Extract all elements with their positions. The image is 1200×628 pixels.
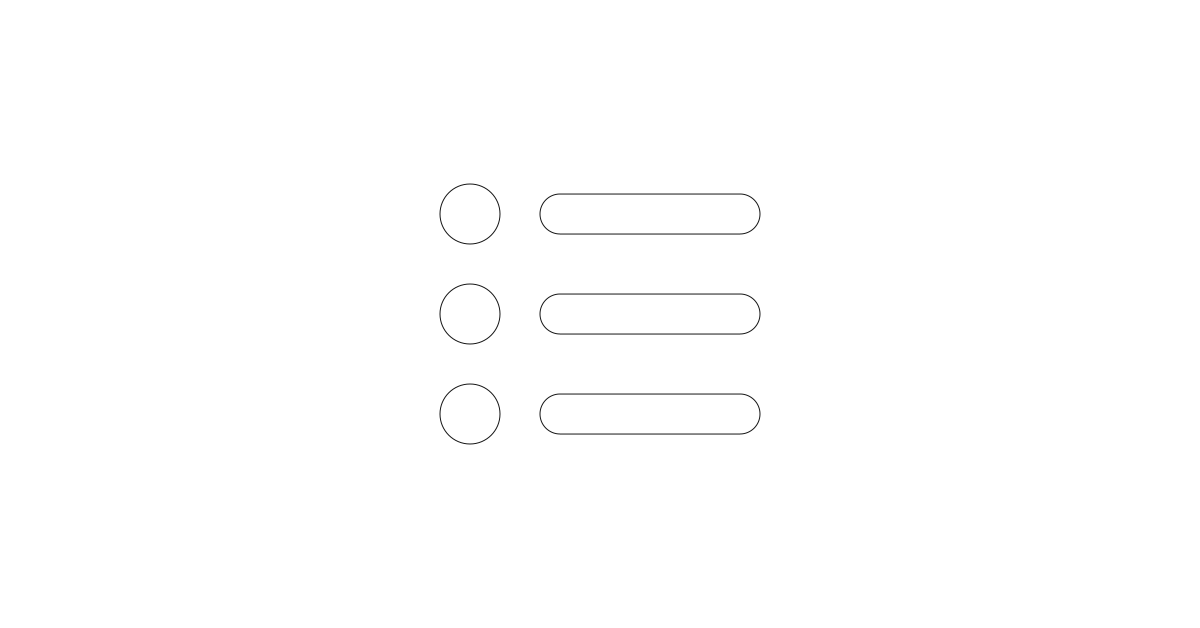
button[interactable]: Loading item 1 xyxy=(440,184,760,244)
button[interactable]: Loading item 3 xyxy=(440,384,760,444)
button[interactable]: Loading item 2 xyxy=(440,284,760,344)
